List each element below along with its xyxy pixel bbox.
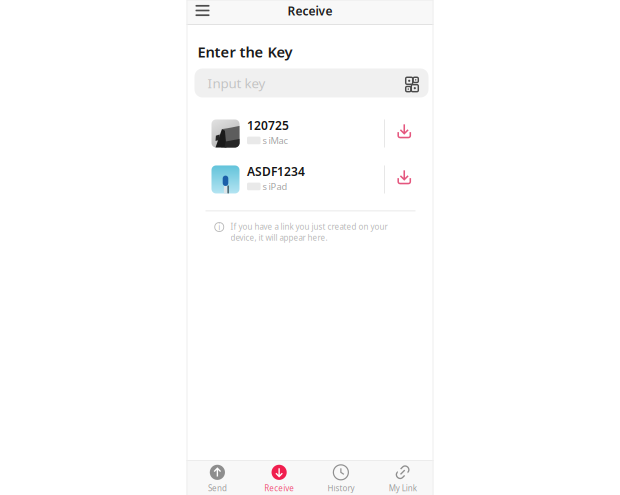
button[interactable]: ASDF1234 [186,156,433,202]
button[interactable]: History [310,458,372,495]
staticText: Enter the Key [197,42,292,61]
staticText: Receive [287,3,332,19]
staticText: Receive [264,483,294,493]
staticText: If you have a link you just created on y… [230,221,387,232]
button[interactable]: 120725 [186,110,433,156]
staticText: My Link [389,483,417,493]
button[interactable]: Receive [248,458,310,495]
staticText: Send [208,483,227,493]
staticText: device, it will appear here. [230,232,327,243]
staticText: i [218,222,220,232]
staticText: 120725 [247,117,289,133]
staticText: History [327,483,354,493]
staticText: ASDF1234 [247,163,305,179]
staticText: s iMac [263,134,288,147]
button[interactable]: Scan QR code [405,75,420,91]
button[interactable]: Send [186,458,248,495]
staticText: s iPad [263,180,288,193]
button[interactable]: Menu [186,1,219,24]
button[interactable]: My Link [372,458,434,495]
staticText: Input key [207,74,265,92]
